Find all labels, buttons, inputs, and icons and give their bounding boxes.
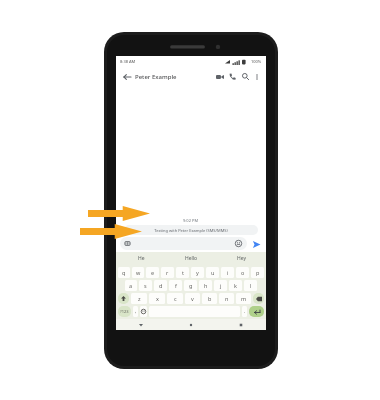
staticText: w [136,269,141,276]
button[interactable]: Home [166,319,216,330]
button[interactable]: Texting with Peter Example (SMS/MMS) [124,225,258,235]
button[interactable]: Hey [216,252,266,265]
staticText: s [144,282,147,289]
staticText: k [234,282,237,289]
button[interactable]: Back [116,319,166,330]
button[interactable]: Backspace [253,293,264,304]
staticText: a [129,282,133,289]
button[interactable]: h [199,280,212,291]
button[interactable]: n [219,293,234,304]
button[interactable]: t [176,267,189,278]
button[interactable]: Send [250,238,262,250]
staticText: He [138,255,145,262]
staticText: b [208,295,212,302]
staticText: ?123 [120,309,129,314]
button[interactable]: g [184,280,197,291]
staticText: e [151,269,155,276]
staticText: z [138,295,141,302]
button[interactable]: w [132,267,144,278]
staticText: l [250,282,252,289]
staticText: 8:38 AM [120,59,136,64]
button[interactable]: Symbols [118,306,131,317]
button[interactable]: z [131,293,147,304]
staticText: 9:02 PM [183,218,199,223]
staticText: m [241,295,247,302]
staticText: y [196,269,199,276]
button[interactable]: e [146,267,159,278]
staticText: o [241,269,245,276]
staticText: q [122,269,126,276]
button[interactable]: Recents [216,319,266,330]
staticText: r [166,269,169,276]
staticText: Hey [237,255,246,262]
button[interactable]: Shift [118,293,129,304]
staticText: n [225,295,229,302]
button[interactable]: Hello [166,252,216,265]
button[interactable]: c [167,293,183,304]
button[interactable]: b [202,293,217,304]
button[interactable]: More options [252,72,261,81]
staticText: Peter Example [135,73,177,81]
staticText: i [227,269,229,276]
staticText: , [135,308,137,315]
staticText: Hello [185,255,198,262]
button[interactable]: m [236,293,251,304]
staticText: d [159,282,163,289]
staticText: c [174,295,177,302]
staticText: v [191,295,194,302]
staticText: u [211,269,215,276]
button[interactable]: Search [240,71,251,82]
button[interactable]: r [161,267,174,278]
button[interactable]: . [242,306,247,317]
button[interactable]: Emoji [234,239,243,248]
button[interactable]: k [229,280,242,291]
staticText: h [204,282,208,289]
staticText: . [244,308,246,315]
button[interactable]: o [236,267,249,278]
button[interactable]: Enter [249,306,264,317]
button[interactable]: , [133,306,138,317]
button[interactable]: Back [121,71,132,82]
button[interactable]: Call [227,71,238,82]
staticText: t [182,269,184,276]
staticText: f [175,282,177,289]
button[interactable]: p [251,267,264,278]
button[interactable]: i [221,267,234,278]
staticText: 100% [251,59,262,64]
button[interactable]: a [125,280,137,291]
button[interactable]: Video call [214,71,225,82]
staticText: x [156,295,159,302]
button[interactable]: Emoji [140,306,147,317]
button[interactable]: He [116,252,166,265]
button[interactable]: f [169,280,182,291]
button[interactable]: u [206,267,219,278]
button[interactable]: y [191,267,204,278]
button[interactable]: d [154,280,167,291]
staticText: Texting with Peter Example (SMS/MMS) [154,228,228,233]
button[interactable]: q [118,267,130,278]
button[interactable]: x [149,293,165,304]
button[interactable]: j [214,280,227,291]
staticText: g [189,282,193,289]
staticText: p [256,269,260,276]
button[interactable]: s [139,280,152,291]
button[interactable]: Emoji [120,237,247,250]
button[interactable]: l [244,280,257,291]
staticText: j [220,282,222,289]
button[interactable]: v [185,293,200,304]
